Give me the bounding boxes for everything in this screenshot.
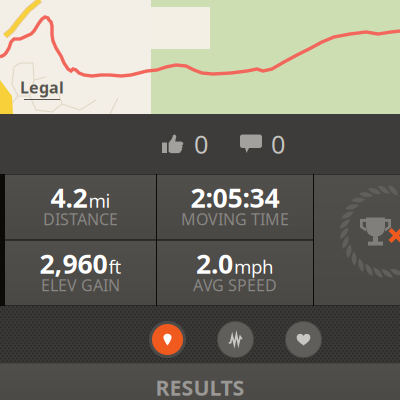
button[interactable]: 2,960 bbox=[5, 240, 156, 305]
staticText: ft bbox=[108, 254, 121, 279]
button[interactable]: Kudos bbox=[157, 117, 213, 171]
staticText: 4.2 bbox=[50, 180, 87, 215]
staticText: 0 bbox=[194, 127, 208, 161]
staticText: 2:05:34 bbox=[190, 180, 279, 215]
button[interactable]: Achievements bbox=[314, 174, 400, 305]
button[interactable]: Legal bbox=[20, 77, 64, 100]
button[interactable]: Analysis bbox=[217, 321, 254, 358]
button[interactable]: Heart rate bbox=[285, 321, 322, 358]
staticText: AVG SPEED bbox=[193, 274, 277, 296]
staticText: ELEV GAIN bbox=[41, 274, 120, 296]
staticText: 0 bbox=[271, 127, 285, 161]
staticText: Legal bbox=[20, 77, 64, 98]
staticText: 2.0 bbox=[196, 246, 233, 281]
staticText: DISTANCE bbox=[43, 208, 118, 230]
staticText: RESULTS bbox=[155, 373, 244, 400]
button[interactable]: Map bbox=[149, 321, 186, 358]
button[interactable]: Comments bbox=[235, 117, 290, 171]
staticText: 2,960 bbox=[39, 246, 107, 281]
staticText: MOVING TIME bbox=[181, 208, 289, 230]
button[interactable]: RESULTS bbox=[0, 373, 400, 400]
button[interactable]: 2:05:34 bbox=[157, 174, 313, 239]
button[interactable]: 2.0 bbox=[157, 240, 313, 305]
staticText: mi bbox=[88, 188, 110, 213]
button[interactable]: 4.2 bbox=[5, 174, 156, 239]
staticText: mph bbox=[234, 254, 274, 279]
